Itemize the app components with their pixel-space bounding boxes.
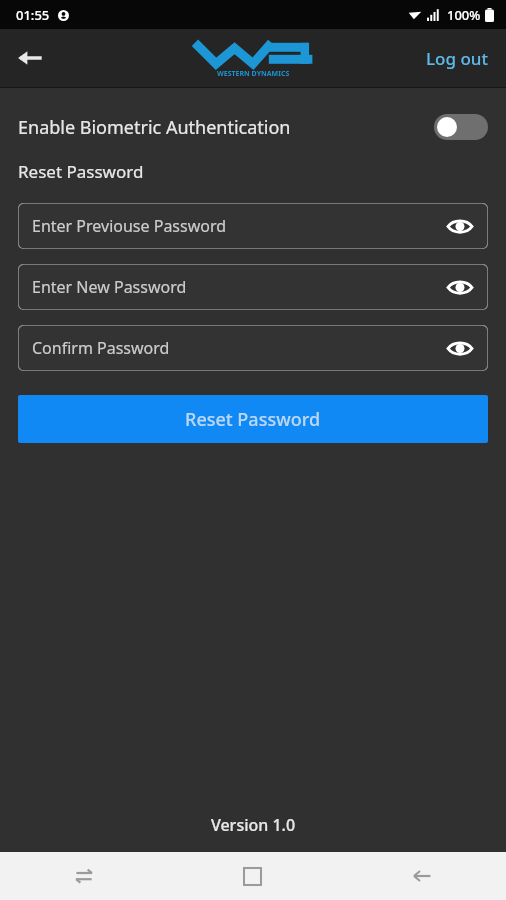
button[interactable]: Confirm Password (18, 325, 488, 371)
button[interactable]: Reset Password (18, 395, 488, 443)
staticText: Log out (426, 47, 488, 70)
button[interactable]: Back (337, 852, 506, 900)
staticText: Confirm Password (32, 337, 170, 359)
staticText: 100% (447, 6, 481, 24)
staticText: WESTERN DYNAMICS (217, 69, 290, 79)
staticText: Enable Biometric Authentication (18, 115, 434, 140)
button[interactable]: Enter Previouse Password (18, 203, 488, 249)
button[interactable]: Home (168, 852, 337, 900)
staticText: Enter New Password (32, 276, 187, 298)
button[interactable]: Enter New Password (18, 264, 488, 310)
staticText: Version 1.0 (0, 814, 506, 836)
button[interactable]: Show password (444, 271, 476, 303)
button[interactable]: Enable Biometric Authentication toggle (434, 114, 488, 140)
button[interactable]: Log out (418, 37, 496, 80)
staticText: Reset Password (18, 160, 144, 183)
staticText: Reset Password (185, 407, 321, 432)
staticText: 01:55 (16, 6, 50, 24)
button[interactable]: Recents (0, 852, 168, 900)
button[interactable]: Show password (444, 210, 476, 242)
button[interactable]: Show password (444, 332, 476, 364)
staticText: Enter Previouse Password (32, 215, 227, 237)
button[interactable]: Enable Biometric Authentication (0, 108, 506, 146)
button[interactable]: Back (6, 34, 54, 82)
